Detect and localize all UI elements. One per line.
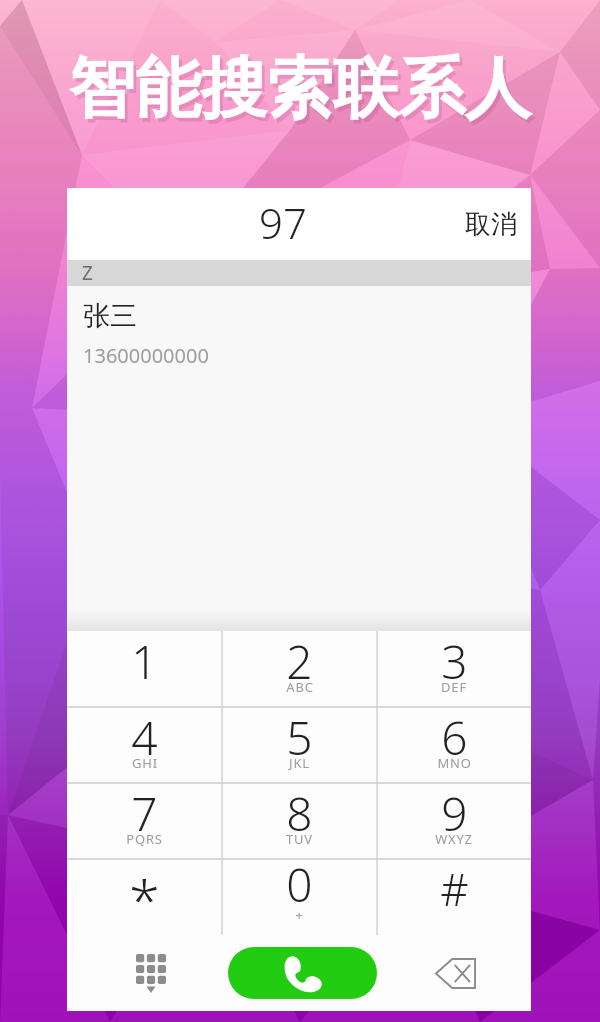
staticText: 5 [286,706,313,769]
staticText: 4 [131,706,158,769]
button[interactable]: Delete [377,935,531,1011]
staticText: 取消 [465,208,517,241]
staticText: 智能搜索联系人 [69,47,531,130]
staticText: GHI [132,754,158,772]
button[interactable]: 5 [222,707,377,783]
staticText: Z [82,260,93,286]
button[interactable]: 9 [377,783,531,859]
staticText: JKL [289,754,310,772]
staticText: TUV [286,830,313,848]
staticText: DEF [441,678,467,696]
button[interactable]: 4 [67,707,222,783]
button[interactable]: * [67,859,222,935]
staticText: 8 [286,782,313,845]
staticText: MNO [437,754,472,772]
button[interactable]: 取消 [451,188,531,260]
staticText: PQRS [126,830,163,848]
staticText: # [440,859,469,919]
staticText: 9 [441,782,468,845]
button[interactable]: 7 [67,783,222,859]
button[interactable]: 2 [222,631,377,707]
button[interactable]: 3 [377,631,531,707]
button[interactable]: 张三 [67,286,531,369]
staticText: 0 [286,853,313,916]
staticText: * [129,861,160,937]
button[interactable]: 8 [222,783,377,859]
button[interactable]: Call [228,947,377,999]
staticText: 3 [441,630,468,693]
staticText: 张三 [83,299,137,333]
staticText: ABC [286,678,314,696]
button[interactable]: # [377,859,531,935]
button[interactable]: 6 [377,707,531,783]
button[interactable]: 0 [222,859,377,935]
staticText: WXYZ [435,830,473,848]
staticText: + [295,906,304,924]
staticText: 13600000000 [83,342,209,369]
button[interactable]: Hide keypad [67,935,222,1011]
staticText: 97 [259,194,307,251]
staticText: 1 [131,630,158,693]
staticText: 智能搜索联系人 [72,51,534,134]
button[interactable]: 1 [67,631,222,707]
staticText: 7 [131,782,158,845]
staticText: 2 [286,630,313,693]
staticText: 6 [441,706,468,769]
